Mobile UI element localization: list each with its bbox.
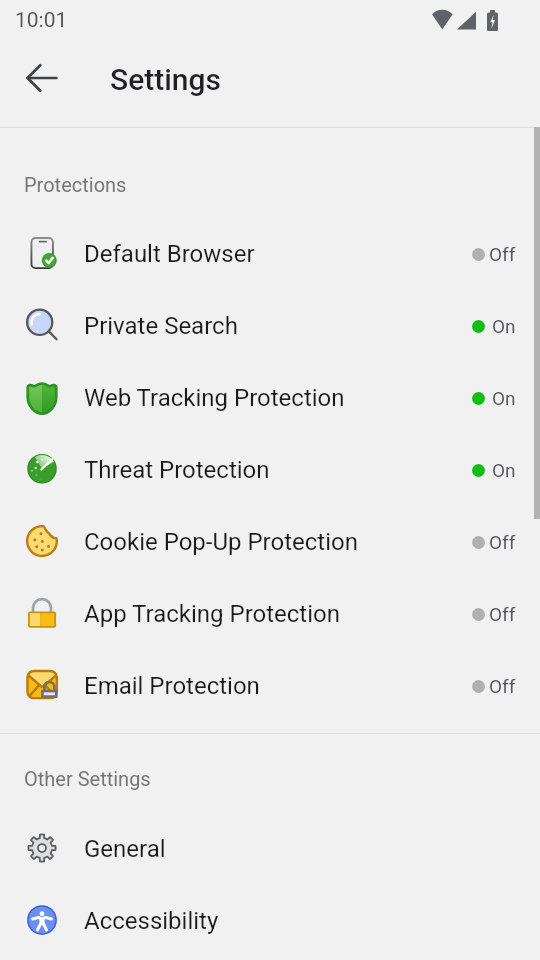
staticText: Email Protection xyxy=(84,672,260,700)
staticText: Off xyxy=(489,675,516,697)
button[interactable]: Accessibility xyxy=(0,885,540,957)
button[interactable]: App Tracking Protection xyxy=(0,578,540,650)
button[interactable]: Web Tracking Protection xyxy=(0,362,540,434)
staticText: Default Browser xyxy=(84,240,255,268)
staticText: On xyxy=(492,387,516,409)
button[interactable]: Private Search xyxy=(0,290,540,362)
staticText: App Tracking Protection xyxy=(84,600,340,628)
staticText: Off xyxy=(489,243,516,265)
staticText: Cookie Pop-Up Protection xyxy=(84,528,358,556)
staticText: Threat Protection xyxy=(84,456,270,484)
staticText: Off xyxy=(489,531,516,553)
staticText: Other Settings xyxy=(24,767,151,790)
staticText: Protections xyxy=(24,173,127,196)
staticText: On xyxy=(492,315,516,337)
staticText: 10:01 xyxy=(15,8,68,33)
button[interactable]: Default Browser xyxy=(0,218,540,290)
staticText: General xyxy=(84,835,166,863)
button[interactable]: Back xyxy=(13,49,71,107)
button[interactable]: General xyxy=(0,813,540,885)
staticText: On xyxy=(492,459,516,481)
staticText: Accessibility xyxy=(84,907,219,935)
staticText: Off xyxy=(489,603,516,625)
staticText: Settings xyxy=(110,62,222,97)
button[interactable]: Threat Protection xyxy=(0,434,540,506)
staticText: Private Search xyxy=(84,312,238,340)
button[interactable]: Cookie Pop-Up Protection xyxy=(0,506,540,578)
button[interactable]: Email Protection xyxy=(0,650,540,722)
staticText: Web Tracking Protection xyxy=(84,384,345,412)
